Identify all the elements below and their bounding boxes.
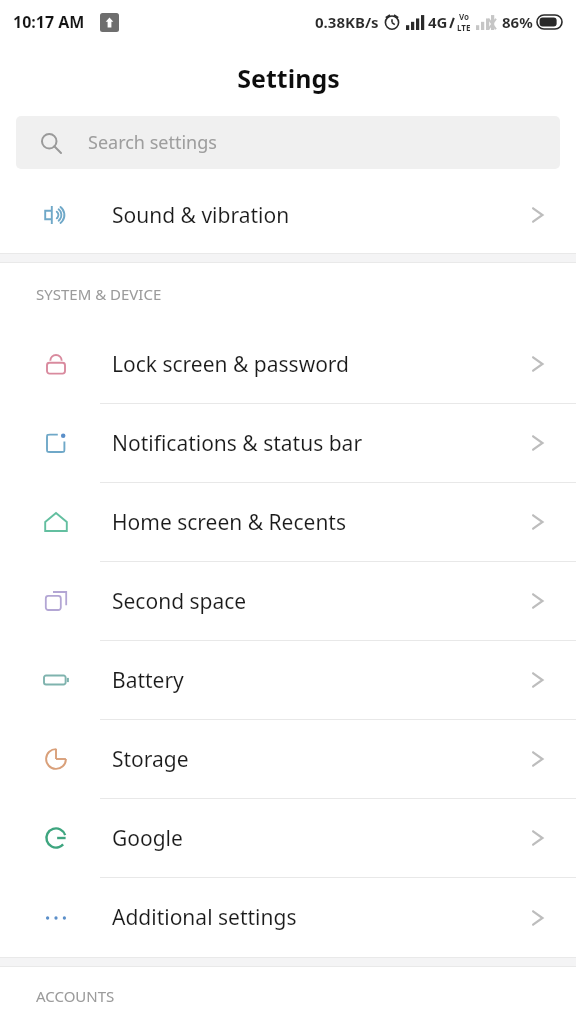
staticText: 4G [428,12,448,32]
staticText: 0.38KB/s [315,12,379,32]
staticText: Notifications & status bar [112,429,363,458]
button[interactable]: Additional settings [0,878,576,957]
staticText: 86% [502,12,533,32]
staticText: ACCOUNTS [36,986,115,1006]
button[interactable]: Sound & vibration [0,178,576,252]
staticText: Vo [459,11,470,22]
button[interactable]: Battery [0,641,576,719]
staticText: Home screen & Recents [112,508,347,537]
staticText: Search settings [88,130,217,155]
button[interactable]: Home screen & Recents [0,483,576,561]
staticText: Additional settings [112,903,297,932]
staticText: Lock screen & password [112,350,350,379]
button[interactable]: Google [0,799,576,877]
staticText: SYSTEM & DEVICE [36,284,162,304]
staticText: Storage [112,745,189,774]
button[interactable]: Search settings [16,116,560,169]
staticText: Google [112,824,183,853]
staticText: Sound & vibration [112,201,290,230]
staticText: 10:17 AM [13,11,85,33]
staticText: Second space [112,587,247,616]
button[interactable]: Lock screen & password [0,325,576,403]
button[interactable]: Second space [0,562,576,640]
staticText: Settings [237,61,340,95]
button[interactable]: Storage [0,720,576,798]
button[interactable]: Notifications & status bar [0,404,576,482]
staticText: Battery [112,666,184,695]
staticText: LTE [457,22,471,33]
